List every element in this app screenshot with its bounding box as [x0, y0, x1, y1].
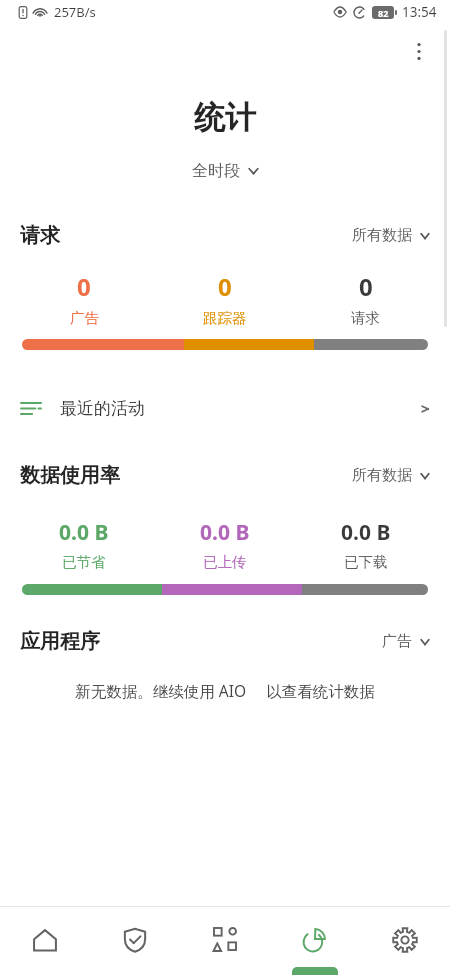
button[interactable]: Protection	[90, 907, 180, 975]
staticText: 已下载	[344, 553, 388, 571]
staticText: 数据使用率	[20, 463, 120, 488]
button[interactable]: Settings	[360, 907, 450, 975]
button[interactable]: 0	[295, 270, 436, 327]
staticText: 请求	[351, 309, 380, 327]
button[interactable]: 广告	[382, 632, 430, 651]
button[interactable]: 0.0 B	[154, 518, 295, 571]
staticText: 13:54	[402, 3, 437, 21]
button[interactable]: 全时段	[0, 157, 450, 185]
staticText: 已上传	[203, 553, 247, 571]
staticText: 最近的活动	[60, 398, 145, 419]
staticText: 0.0 B	[200, 518, 250, 547]
button[interactable]: 最近的活动	[0, 390, 450, 427]
button[interactable]: 所有数据	[352, 466, 430, 485]
staticText: 广告	[382, 632, 412, 651]
button[interactable]: Home	[0, 907, 90, 975]
staticText: 0	[77, 270, 91, 303]
button[interactable]: Statistics	[270, 907, 360, 975]
button[interactable]: 所有数据	[352, 226, 430, 245]
button[interactable]: 0	[14, 270, 154, 327]
button[interactable]: 0.0 B	[14, 518, 154, 571]
staticText: 所有数据	[352, 466, 412, 485]
staticText: 0.0 B	[341, 518, 391, 547]
staticText: 0	[359, 270, 373, 303]
staticText: 已节省	[62, 553, 106, 571]
staticText: 统计	[0, 98, 450, 137]
button[interactable]: Apps	[180, 907, 270, 975]
staticText: 新无数据。继续使用 AIO 以查看统计数据	[24, 680, 426, 701]
staticText: 82	[378, 7, 389, 19]
staticText: 0	[218, 270, 232, 303]
button[interactable]: 0	[154, 270, 295, 327]
staticText: 257B/s	[54, 3, 96, 21]
staticText: 全时段	[192, 161, 240, 181]
staticText: 跟踪器	[203, 309, 247, 327]
staticText: 请求	[20, 223, 60, 248]
staticText: 广告	[70, 309, 99, 327]
button[interactable]: 0.0 B	[295, 518, 436, 571]
staticText: 0.0 B	[59, 518, 109, 547]
button[interactable]: More options	[400, 32, 438, 70]
staticText: 应用程序	[20, 629, 100, 654]
staticText: 所有数据	[352, 226, 412, 245]
